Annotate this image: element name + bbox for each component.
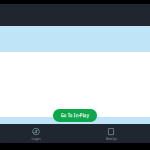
staticText: Go To In-Play [60, 112, 89, 119]
staticText: Login [31, 136, 40, 141]
staticText: Betslip [105, 136, 116, 141]
button[interactable]: Go To In-Play [53, 109, 97, 122]
button[interactable]: Betslip [75, 124, 150, 143]
button[interactable]: Login [0, 124, 75, 143]
